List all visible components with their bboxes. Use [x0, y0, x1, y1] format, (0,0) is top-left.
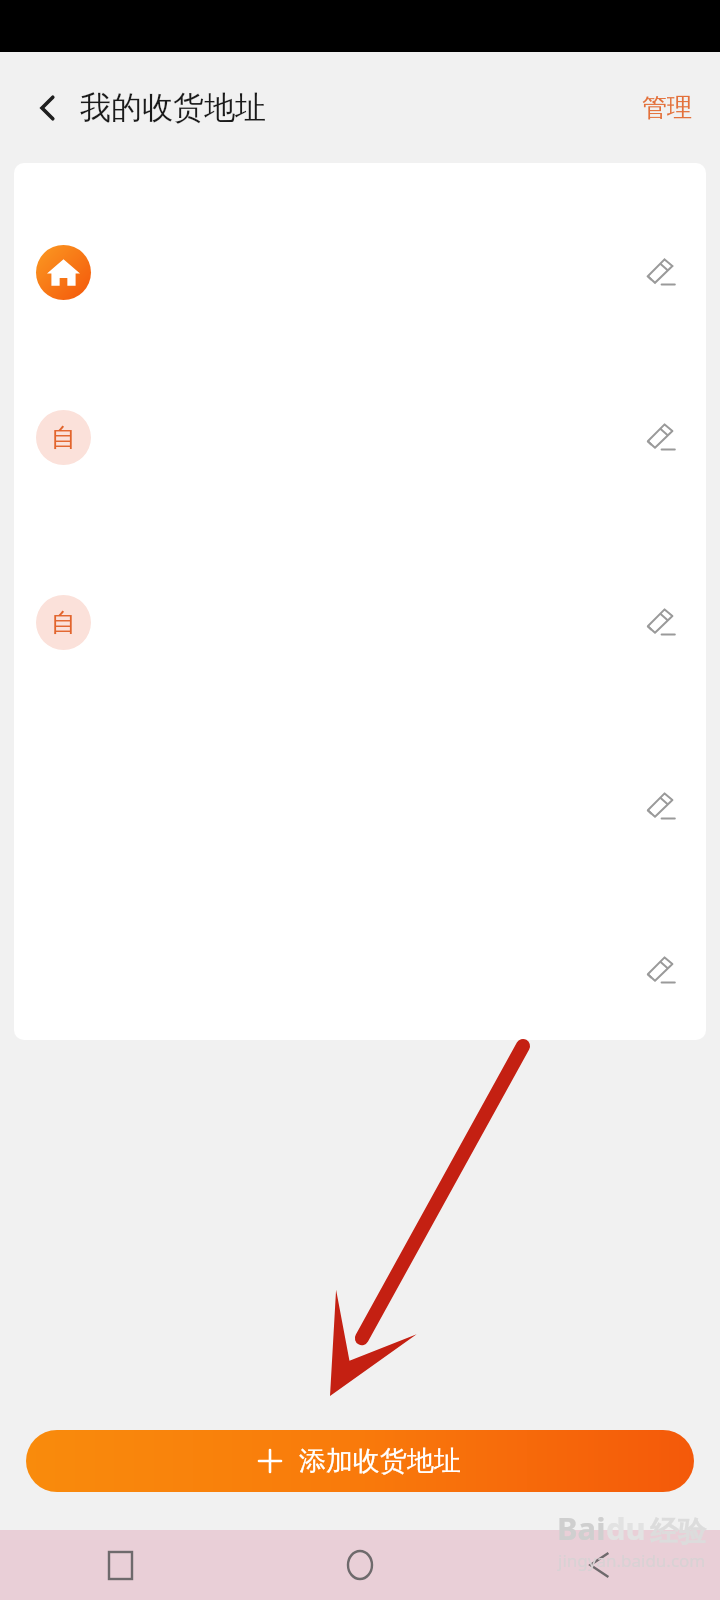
- button[interactable]: Edit: [14, 751, 706, 861]
- button[interactable]: 管理: [636, 84, 698, 131]
- button[interactable]: Home: [240, 1530, 480, 1600]
- button[interactable]: Edit: [634, 245, 688, 299]
- staticText: du: [606, 1507, 646, 1549]
- staticText: jingyan.baidu.com: [558, 1549, 706, 1572]
- staticText: 添加收货地址: [299, 1444, 461, 1478]
- staticText: Bai: [557, 1507, 606, 1549]
- staticText: 自: [51, 422, 76, 453]
- button[interactable]: Recents: [0, 1530, 240, 1600]
- staticText: 我的收货地址: [80, 88, 266, 127]
- button[interactable]: Edit: [14, 217, 706, 327]
- staticText: 经验: [650, 1514, 706, 1549]
- button[interactable]: Back: [20, 80, 76, 136]
- button[interactable]: Edit: [634, 943, 688, 997]
- button[interactable]: Edit: [634, 595, 688, 649]
- button[interactable]: Edit: [634, 410, 688, 464]
- button[interactable]: 添加收货地址: [26, 1430, 694, 1492]
- button[interactable]: Back: [480, 1530, 720, 1600]
- button[interactable]: Edit: [14, 915, 706, 1025]
- button[interactable]: 自: [14, 567, 706, 677]
- staticText: 自: [51, 607, 76, 638]
- button[interactable]: Edit: [634, 779, 688, 833]
- staticText: 管理: [642, 92, 692, 123]
- button[interactable]: 自: [14, 382, 706, 492]
